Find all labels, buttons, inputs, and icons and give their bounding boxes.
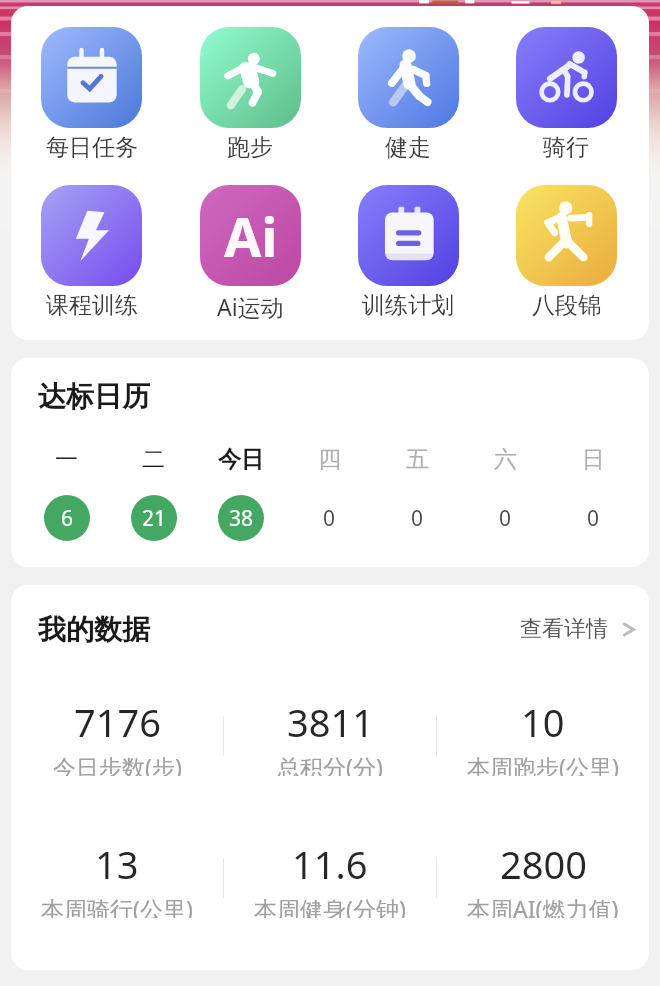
staticText: 今日 <box>218 445 264 474</box>
button[interactable]: 训练计划 <box>329 185 487 320</box>
staticText: 二 <box>142 445 165 474</box>
staticText: 一 <box>55 445 78 474</box>
staticText: Ai运动 <box>217 291 284 322</box>
button[interactable]: 二 <box>110 445 197 541</box>
staticText: 跑步 <box>227 133 273 162</box>
staticText: 本周健身(分钟) <box>254 893 406 918</box>
other: 查看详情 <box>622 623 635 636</box>
button[interactable]: 13 <box>11 838 223 918</box>
staticText: 每日任务 <box>46 133 138 162</box>
staticText: 五 <box>406 445 429 474</box>
button[interactable]: 2800 <box>437 838 649 918</box>
staticText: 38 <box>229 504 254 533</box>
button[interactable]: 四 <box>285 445 373 541</box>
staticText: 11.6 <box>292 838 368 890</box>
button[interactable]: 课程训练 <box>12 185 171 320</box>
button[interactable]: 跑步 <box>171 27 329 162</box>
staticText: 本周跑步(公里) <box>467 751 619 776</box>
staticText: 本周骑行(公里) <box>41 893 193 918</box>
staticText: 2800 <box>500 838 587 890</box>
staticText: 四 <box>318 445 341 474</box>
button[interactable]: 每日任务 <box>12 27 171 162</box>
staticText: 10 <box>521 696 565 748</box>
staticText: 健走 <box>385 133 431 162</box>
staticText: 7176 <box>74 696 161 748</box>
staticText: 6 <box>61 504 74 533</box>
staticText: 总积分(分) <box>277 751 383 776</box>
button[interactable]: 今日 <box>197 445 285 541</box>
button[interactable]: 11.6 <box>224 838 436 918</box>
button[interactable]: 7176 <box>11 696 223 776</box>
staticText: 我的数据 <box>38 612 150 647</box>
button[interactable]: 日 <box>549 445 637 541</box>
button[interactable]: 五 <box>373 445 461 541</box>
button[interactable]: 八段锦 <box>487 185 645 320</box>
staticText: 日 <box>582 445 605 474</box>
button[interactable]: 六 <box>461 445 549 541</box>
staticText: 查看详情 <box>520 615 608 643</box>
staticText: 训练计划 <box>362 291 454 320</box>
staticText: 13 <box>95 838 139 890</box>
staticText: 0 <box>587 504 600 533</box>
button[interactable]: Ai <box>171 185 329 322</box>
staticText: 达标日历 <box>38 379 150 414</box>
button[interactable]: 3811 <box>224 696 436 776</box>
button[interactable]: 健走 <box>329 27 487 162</box>
staticText: Ai <box>224 199 278 273</box>
staticText: 21 <box>142 504 167 533</box>
staticText: 课程训练 <box>46 291 138 320</box>
staticText: 六 <box>494 445 517 474</box>
staticText: 本周AI(燃力值) <box>467 893 619 918</box>
button[interactable]: 查看详情 <box>516 609 639 649</box>
staticText: 3811 <box>287 696 374 748</box>
staticText: 八段锦 <box>532 291 601 320</box>
button[interactable]: 一 <box>23 445 110 541</box>
staticText: 0 <box>323 504 336 533</box>
button[interactable]: 骑行 <box>487 27 645 162</box>
staticText: 今日步数(步) <box>53 751 182 776</box>
staticText: 0 <box>411 504 424 533</box>
staticText: 0 <box>499 504 512 533</box>
button[interactable]: 10 <box>437 696 649 776</box>
staticText: 骑行 <box>543 133 589 162</box>
